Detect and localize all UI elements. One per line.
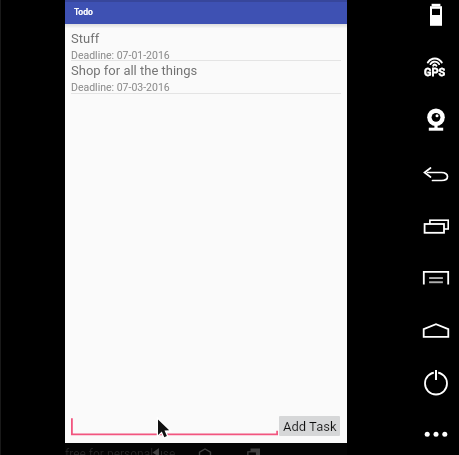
staticText: Stuff [71,31,100,46]
button[interactable]: Home [410,318,459,342]
button[interactable]: Menu [410,266,459,290]
staticText: Shop for all the things [71,63,198,78]
button[interactable]: New task name [71,414,278,436]
button[interactable]: Shop for all the things [65,61,347,94]
staticText: free for personal use [65,447,176,455]
staticText: GPS [424,66,446,79]
button[interactable]: Stuff [65,24,347,61]
button[interactable]: Camera [410,104,459,134]
button[interactable]: Back [410,162,459,186]
button[interactable]: GPS [410,54,459,78]
button[interactable]: Power [410,368,459,398]
button[interactable]: More options [410,424,459,444]
button[interactable]: Add Task [279,416,340,436]
staticText: Todo [74,7,93,17]
button[interactable]: Todo [65,0,347,24]
button[interactable]: Battery [410,2,459,32]
button[interactable]: Recents [245,443,263,455]
staticText: Deadline: 07-03-2016 [71,81,170,93]
button[interactable]: Home [197,443,215,455]
staticText: Add Task [283,419,337,434]
staticText: Deadline: 07-01-2016 [71,49,170,61]
button[interactable]: Back [150,443,168,455]
button[interactable]: Rotate screen [410,214,459,238]
